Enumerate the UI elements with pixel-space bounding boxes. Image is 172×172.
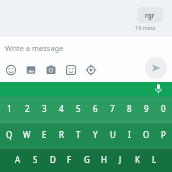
button[interactable] bbox=[145, 57, 167, 79]
button[interactable] bbox=[151, 82, 166, 96]
staticText: R bbox=[59, 129, 64, 140]
staticText: 3 bbox=[42, 103, 47, 114]
staticText: F bbox=[67, 154, 72, 165]
staticText: H bbox=[101, 154, 107, 165]
button[interactable] bbox=[81, 60, 101, 80]
button[interactable]: G bbox=[78, 147, 95, 172]
button[interactable] bbox=[41, 60, 61, 80]
staticText: L bbox=[152, 154, 157, 165]
staticText: D bbox=[50, 154, 56, 165]
staticText: U bbox=[110, 129, 116, 140]
button[interactable]: K bbox=[129, 147, 146, 172]
button[interactable]: 3 bbox=[36, 96, 53, 121]
staticText: Y bbox=[93, 129, 98, 140]
staticText: rgr bbox=[145, 11, 155, 20]
button[interactable]: H bbox=[95, 147, 112, 172]
button[interactable]: T bbox=[70, 121, 87, 147]
button[interactable]: D bbox=[44, 147, 61, 172]
staticText: 1 bbox=[7, 103, 12, 114]
button[interactable] bbox=[1, 60, 21, 80]
button[interactable]: 8 bbox=[121, 96, 138, 121]
staticText: W bbox=[23, 129, 31, 140]
staticText: K bbox=[135, 154, 140, 165]
staticText: 8 bbox=[127, 103, 132, 114]
button[interactable]: 2 bbox=[18, 96, 36, 121]
button[interactable]: J bbox=[112, 147, 129, 172]
button[interactable]: L bbox=[146, 147, 163, 172]
staticText: I bbox=[128, 129, 131, 140]
button[interactable]: 1 bbox=[0, 96, 18, 121]
button[interactable]: rgr bbox=[137, 7, 163, 23]
staticText: 6 bbox=[93, 103, 98, 114]
staticText: 7 bbox=[110, 103, 115, 114]
button[interactable]: A bbox=[9, 147, 27, 172]
staticText: Write a message bbox=[5, 43, 64, 53]
button[interactable]: F bbox=[61, 147, 78, 172]
button[interactable]: P bbox=[155, 121, 172, 147]
staticText: E bbox=[42, 129, 47, 140]
button[interactable]: U bbox=[104, 121, 121, 147]
button[interactable]: 7 bbox=[104, 96, 121, 121]
button[interactable]: 9 bbox=[138, 96, 155, 121]
button[interactable]: 4 bbox=[53, 96, 70, 121]
staticText: 0 bbox=[161, 103, 166, 114]
button[interactable] bbox=[21, 60, 41, 80]
staticText: 5 bbox=[76, 103, 81, 114]
staticText: 9 bbox=[144, 103, 149, 114]
staticText: S bbox=[33, 154, 38, 165]
button[interactable]: E bbox=[36, 121, 53, 147]
button[interactable]: Q bbox=[0, 121, 18, 147]
staticText: 19 mins bbox=[135, 24, 156, 31]
button[interactable]: 5 bbox=[70, 96, 87, 121]
staticText: Q bbox=[6, 129, 13, 140]
button[interactable]: R bbox=[53, 121, 70, 147]
staticText: A bbox=[15, 154, 21, 165]
button[interactable]: I bbox=[121, 121, 138, 147]
staticText: P bbox=[161, 129, 166, 140]
staticText: 2 bbox=[25, 103, 30, 114]
staticText: G bbox=[84, 154, 90, 165]
button[interactable]: W bbox=[18, 121, 36, 147]
staticText: T bbox=[76, 129, 81, 140]
button[interactable]: 0 bbox=[155, 96, 172, 121]
staticText: O bbox=[143, 129, 150, 140]
button[interactable]: O bbox=[138, 121, 155, 147]
staticText: J bbox=[119, 154, 122, 165]
button[interactable]: Y bbox=[87, 121, 104, 147]
button[interactable] bbox=[61, 60, 81, 80]
staticText: 4 bbox=[59, 103, 64, 114]
button[interactable]: S bbox=[27, 147, 44, 172]
button[interactable]: 6 bbox=[87, 96, 104, 121]
